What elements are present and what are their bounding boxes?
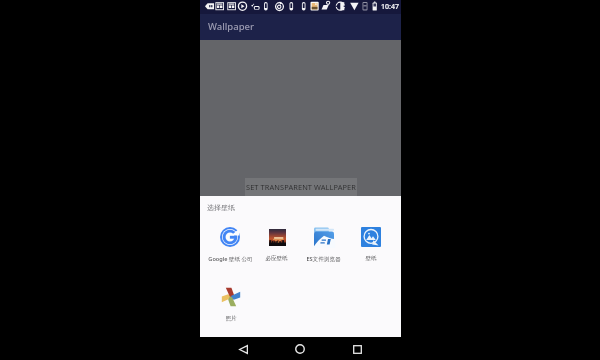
- button[interactable]: 必应壁纸: [253, 227, 300, 262]
- staticText: 10:47: [381, 2, 399, 12]
- button[interactable]: 壁纸: [347, 227, 394, 262]
- staticText: Wallpaper: [208, 20, 254, 33]
- button[interactable]: SET TRANSPARENT WALLPAPER: [245, 178, 357, 196]
- button[interactable]: Home: [289, 338, 311, 360]
- staticText: 照片: [225, 315, 237, 322]
- staticText: ES文件浏览器: [306, 255, 341, 263]
- button[interactable]: 照片: [207, 287, 254, 322]
- staticText: SET TRANSPARENT WALLPAPER: [246, 182, 357, 192]
- button[interactable]: ES文件浏览器: [300, 227, 347, 263]
- staticText: 必应壁纸: [265, 255, 288, 262]
- staticText: 选择壁纸: [207, 203, 235, 212]
- staticText: Google 壁纸 公司: [208, 255, 253, 263]
- button[interactable]: Back: [232, 338, 254, 360]
- button[interactable]: Recent apps: [346, 338, 368, 360]
- staticText: 壁纸: [365, 255, 377, 262]
- button[interactable]: Google 壁纸 公司: [207, 227, 253, 263]
